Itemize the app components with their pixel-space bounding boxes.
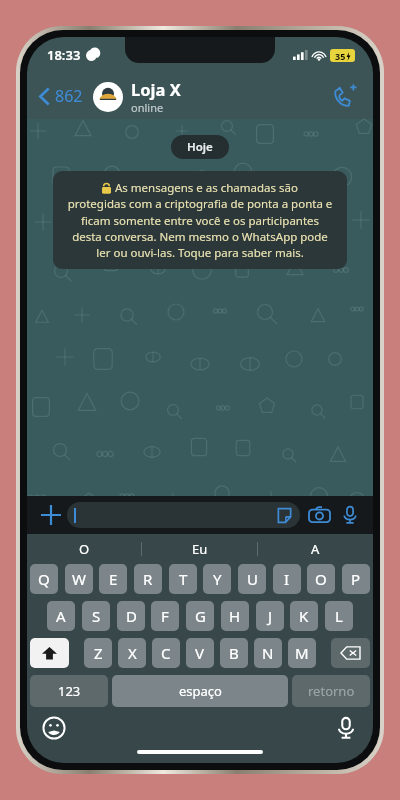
button[interactable]: A bbox=[47, 601, 75, 631]
staticText: T bbox=[179, 569, 188, 589]
staticText: R bbox=[143, 569, 153, 589]
staticText: C bbox=[161, 643, 171, 663]
button[interactable]: W bbox=[65, 564, 93, 594]
button[interactable]: J bbox=[256, 601, 284, 631]
staticText: L bbox=[335, 606, 343, 626]
button[interactable]: N bbox=[254, 638, 282, 668]
staticText: retorno bbox=[308, 682, 355, 700]
staticText: G bbox=[195, 606, 206, 626]
button[interactable]: R bbox=[134, 564, 162, 594]
button[interactable]: M bbox=[288, 638, 316, 668]
button[interactable]: Backspace bbox=[331, 638, 370, 668]
button[interactable]: As mensagens e as chamadas são bbox=[53, 171, 347, 269]
button[interactable]: F bbox=[151, 601, 179, 631]
staticText: 862 bbox=[55, 85, 83, 107]
button[interactable]: H bbox=[221, 601, 249, 631]
staticText: 18:33 bbox=[47, 46, 81, 64]
staticText: W bbox=[72, 569, 86, 589]
staticText: D bbox=[126, 606, 137, 626]
staticText: A bbox=[311, 540, 320, 558]
staticText: B bbox=[229, 643, 239, 663]
button[interactable]: retorno bbox=[292, 675, 370, 707]
button[interactable]: P bbox=[342, 564, 370, 594]
staticText: Hoje bbox=[187, 139, 213, 155]
staticText: 35 bbox=[335, 50, 346, 62]
staticText: V bbox=[195, 643, 205, 663]
staticText: P bbox=[351, 569, 361, 589]
button[interactable]: espaço bbox=[112, 675, 288, 707]
staticText: I bbox=[284, 569, 290, 589]
button[interactable]: Emoji bbox=[43, 717, 65, 739]
button[interactable]: Back, 862 bbox=[27, 79, 87, 113]
staticText: protegidas com a criptografia de ponta a… bbox=[65, 196, 335, 260]
staticText: O bbox=[79, 540, 90, 558]
button[interactable] bbox=[67, 502, 300, 528]
button[interactable]: 123 bbox=[30, 675, 108, 707]
staticText: Loja X bbox=[131, 78, 181, 100]
staticText: As mensagens e as chamadas são bbox=[115, 180, 298, 196]
staticText: J bbox=[268, 606, 273, 626]
staticText: N bbox=[262, 643, 274, 663]
button[interactable]: E bbox=[99, 564, 127, 594]
button[interactable]: Camera bbox=[300, 505, 339, 526]
staticText: H bbox=[229, 606, 241, 626]
button[interactable]: L bbox=[325, 601, 353, 631]
button[interactable]: Loja X bbox=[93, 78, 325, 115]
button[interactable]: Z bbox=[84, 638, 112, 668]
button[interactable]: G bbox=[186, 601, 214, 631]
staticText: X bbox=[128, 643, 137, 663]
button[interactable]: B bbox=[220, 638, 248, 668]
staticText: U bbox=[247, 569, 258, 589]
staticText: online bbox=[131, 100, 164, 115]
staticText: 123 bbox=[58, 682, 81, 700]
button[interactable]: Eu bbox=[142, 534, 257, 564]
button[interactable]: Voice message bbox=[339, 506, 373, 524]
button[interactable]: D bbox=[117, 601, 145, 631]
button[interactable]: K bbox=[290, 601, 318, 631]
staticText: K bbox=[299, 606, 309, 626]
button[interactable]: Attach bbox=[27, 505, 67, 525]
button[interactable]: U bbox=[238, 564, 266, 594]
button[interactable]: O bbox=[307, 564, 335, 594]
staticText: S bbox=[92, 606, 101, 626]
button[interactable]: A bbox=[258, 534, 373, 564]
button[interactable]: Hoje bbox=[171, 135, 229, 159]
button[interactable]: I bbox=[273, 564, 301, 594]
button[interactable]: Q bbox=[30, 564, 58, 594]
button[interactable]: V bbox=[186, 638, 214, 668]
staticText: Z bbox=[94, 643, 103, 663]
staticText: F bbox=[161, 606, 169, 626]
button[interactable]: Y bbox=[203, 564, 231, 594]
button[interactable]: Dictation bbox=[335, 717, 357, 739]
staticText: Y bbox=[213, 569, 222, 589]
button[interactable]: X bbox=[118, 638, 146, 668]
staticText: E bbox=[109, 569, 118, 589]
staticText: Eu bbox=[192, 540, 208, 558]
button[interactable]: Call bbox=[325, 76, 373, 116]
button[interactable]: C bbox=[152, 638, 180, 668]
staticText: A bbox=[56, 606, 66, 626]
staticText: Q bbox=[38, 569, 50, 589]
button[interactable]: O bbox=[27, 534, 141, 564]
button[interactable]: T bbox=[169, 564, 197, 594]
staticText: M bbox=[295, 643, 309, 663]
button[interactable]: S bbox=[82, 601, 110, 631]
staticText: espaço bbox=[179, 682, 222, 700]
button[interactable]: Shift bbox=[30, 638, 69, 668]
staticText: O bbox=[315, 569, 327, 589]
